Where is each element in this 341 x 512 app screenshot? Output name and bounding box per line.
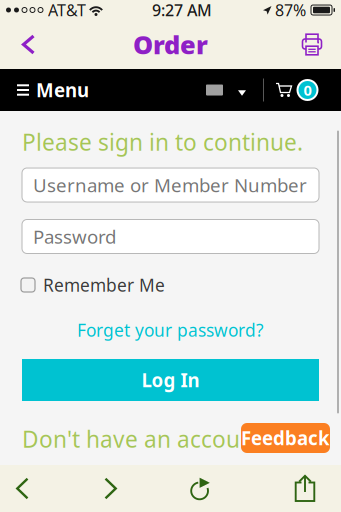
button[interactable]: Share bbox=[279, 465, 330, 511]
staticText: Order bbox=[133, 28, 208, 61]
staticText: Forget your password? bbox=[77, 318, 264, 341]
button[interactable]: Forward bbox=[85, 465, 136, 511]
staticText: Menu bbox=[36, 78, 89, 102]
staticText: 87% bbox=[275, 0, 306, 21]
staticText: 0 bbox=[303, 80, 311, 100]
button[interactable]: Log In bbox=[22, 359, 319, 401]
button[interactable]: Print bbox=[287, 20, 341, 69]
button[interactable]: Remember Me bbox=[15, 267, 171, 302]
button[interactable]: Back bbox=[0, 20, 50, 68]
staticText: Don't have an account? bbox=[22, 424, 272, 454]
button[interactable]: Select store bbox=[198, 73, 254, 106]
button[interactable]: Menu bbox=[8, 67, 98, 113]
staticText: Log In bbox=[141, 368, 199, 392]
staticText: Username or Member Number bbox=[33, 173, 307, 197]
button[interactable]: Reload bbox=[175, 465, 226, 511]
staticText: Remember Me bbox=[43, 273, 165, 296]
staticText: Please sign in to continue. bbox=[22, 127, 303, 157]
staticText: Password bbox=[33, 224, 116, 249]
button[interactable]: Back bbox=[0, 465, 48, 511]
staticText: AT&T bbox=[48, 0, 86, 21]
staticText: 9:27 AM bbox=[152, 0, 212, 21]
staticText: Feedback bbox=[241, 426, 330, 450]
button[interactable]: Forget your password? bbox=[69, 312, 272, 347]
button[interactable]: Cart, 0 items bbox=[269, 70, 324, 110]
button[interactable]: Feedback bbox=[241, 423, 330, 453]
